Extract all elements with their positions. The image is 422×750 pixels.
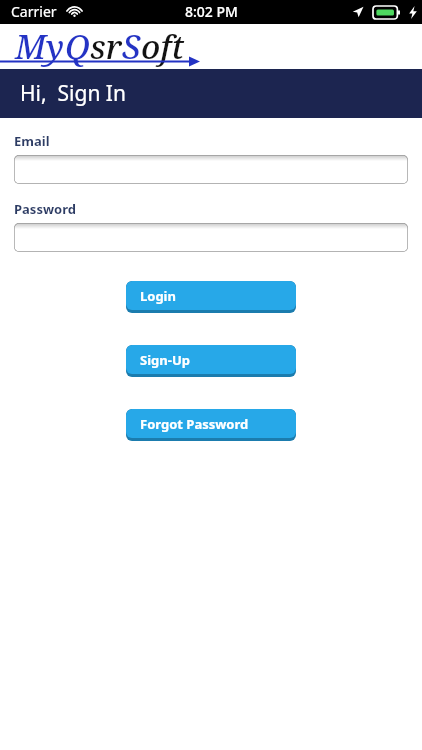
staticText: sr <box>90 24 122 69</box>
button[interactable]: Sign-Up <box>126 345 296 377</box>
button[interactable] <box>14 155 408 184</box>
button[interactable]: Login <box>126 281 296 313</box>
staticText: oft <box>141 24 185 69</box>
staticText: My <box>15 24 65 69</box>
button[interactable]: Hi, Sign In <box>0 69 422 118</box>
staticText: Password <box>14 200 76 218</box>
staticText: Login <box>140 287 176 305</box>
button[interactable]: Forgot Password <box>126 409 296 441</box>
staticText: Sign-Up <box>140 351 190 369</box>
staticText: Carrier <box>11 2 57 21</box>
button[interactable] <box>14 223 408 252</box>
staticText: 8:02 PM <box>185 2 238 21</box>
staticText: Email <box>14 132 50 150</box>
staticText: S <box>122 24 141 69</box>
staticText: Forgot Password <box>140 415 249 433</box>
staticText: Q <box>65 24 90 69</box>
staticText: Hi, Sign In <box>20 79 126 108</box>
